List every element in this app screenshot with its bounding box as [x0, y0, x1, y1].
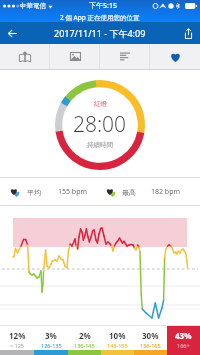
- staticText: 持續時間: [87, 141, 113, 149]
- staticText: 30%: [142, 330, 159, 341]
- staticText: 155 bpm: [58, 187, 87, 197]
- staticText: 28:00: [73, 110, 127, 139]
- staticText: < 125: [10, 342, 25, 349]
- button[interactable]: Back: [0, 22, 24, 44]
- staticText: 平均: [27, 188, 41, 197]
- staticText: 2%: [79, 330, 91, 341]
- button[interactable]: Share: [176, 22, 200, 44]
- button[interactable]: Map: [0, 44, 50, 69]
- staticText: 43%: [175, 330, 192, 341]
- staticText: 126-135: [41, 342, 62, 349]
- staticText: 182 bpm: [151, 187, 180, 197]
- button[interactable]: 12%: [0, 326, 34, 355]
- staticText: 166+: [177, 342, 190, 349]
- staticText: 12%: [9, 330, 26, 341]
- button[interactable]: Photos: [50, 44, 100, 69]
- button[interactable]: 2%: [68, 326, 101, 355]
- staticText: 最高: [122, 188, 136, 197]
- button[interactable]: 43%: [167, 326, 200, 355]
- staticText: 2 個 App 正在使用您的位置: [60, 13, 140, 22]
- staticText: 中華電信: [20, 2, 46, 10]
- button[interactable]: 30%: [134, 326, 167, 355]
- button[interactable]: Heart rate: [150, 44, 200, 69]
- staticText: 下午5:15: [89, 1, 117, 11]
- staticText: 3%: [45, 330, 57, 341]
- staticText: 紅燈: [94, 100, 107, 108]
- button[interactable]: 3%: [34, 326, 68, 355]
- staticText: 136-145: [74, 342, 95, 349]
- staticText: 2017/11/11 - 下午4:09: [54, 27, 146, 39]
- staticText: 146-155: [107, 342, 128, 349]
- staticText: 10%: [109, 330, 126, 341]
- button[interactable]: 10%: [101, 326, 134, 355]
- button[interactable]: Details: [100, 44, 150, 69]
- staticText: 156-165: [140, 342, 161, 349]
